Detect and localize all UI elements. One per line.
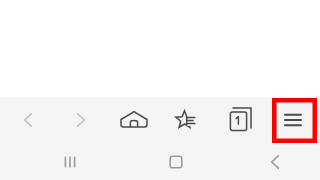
button[interactable]: Home [107, 97, 160, 143]
button[interactable]: Forward [54, 97, 107, 143]
button[interactable]: Back [1, 97, 54, 143]
button[interactable]: Recent apps [17, 143, 123, 180]
button[interactable]: Home [123, 143, 229, 180]
button[interactable]: Bookmarks [160, 97, 213, 143]
button[interactable]: Menu [266, 97, 319, 143]
button[interactable]: Back [229, 143, 320, 180]
button[interactable]: Tabs, 1 open [213, 97, 266, 143]
